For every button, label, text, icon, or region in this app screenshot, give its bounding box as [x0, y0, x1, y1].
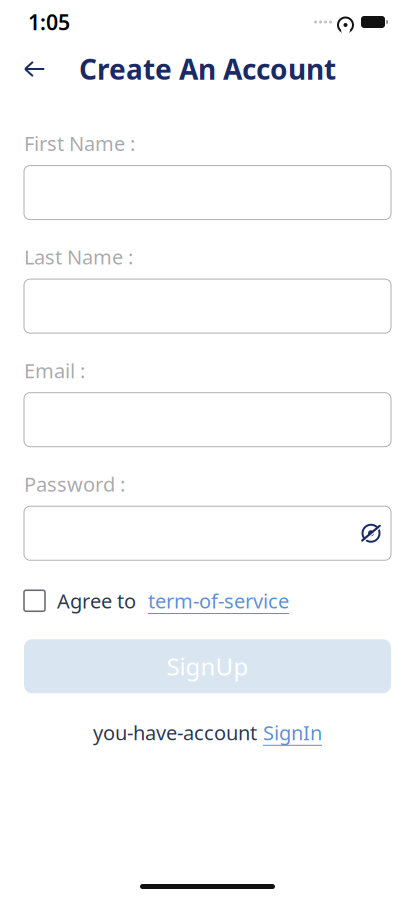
button[interactable]: Back: [12, 47, 56, 91]
staticText: you-have-account: [93, 719, 257, 746]
staticText: Email :: [24, 357, 85, 384]
staticText: Agree to: [57, 587, 136, 614]
staticText: First Name :: [24, 130, 135, 157]
staticText: Last Name :: [24, 244, 133, 270]
button[interactable]: SignUp: [24, 639, 391, 693]
staticText: Create An Account: [79, 50, 336, 88]
staticText: SignIn: [263, 719, 322, 746]
button[interactable]: SignIn: [257, 719, 322, 746]
staticText: term-of-service: [148, 587, 289, 614]
button[interactable]: Show password: [351, 507, 391, 559]
button[interactable]: term-of-service: [136, 587, 289, 614]
staticText: Password :: [24, 471, 125, 497]
staticText: 1:05: [28, 8, 70, 36]
button[interactable]: Agree to terms of service: [24, 584, 45, 617]
staticText: SignUp: [166, 650, 248, 682]
